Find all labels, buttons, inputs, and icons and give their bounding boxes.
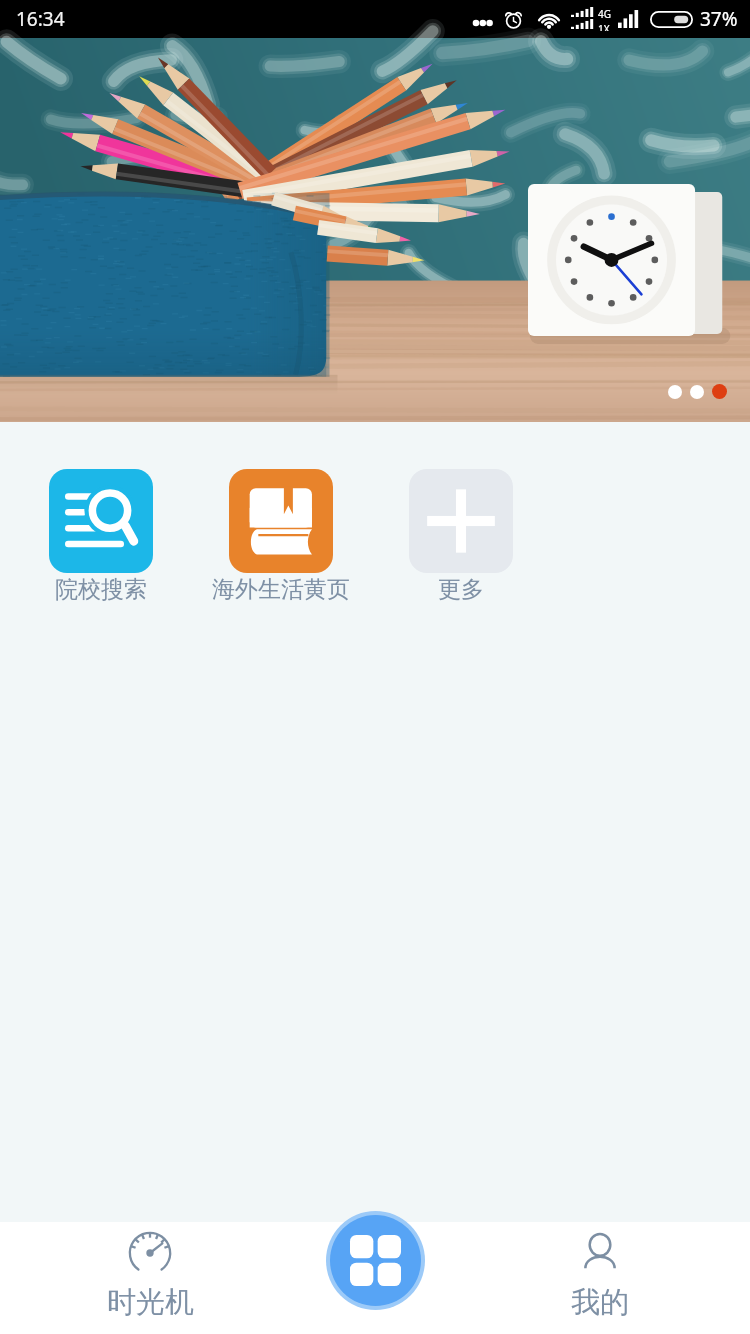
button[interactable]: Time machine [50,1222,250,1334]
button[interactable]: Profile [500,1222,700,1334]
button[interactable]: 院校搜索 [11,469,191,604]
other: Profile [576,1229,624,1277]
staticText: 海外生活黄页 [212,575,350,604]
staticText: 4G [598,7,611,21]
staticText: 更多 [438,575,484,604]
staticText: 1X [598,22,610,31]
button[interactable]: 海外生活黄页 [191,469,371,604]
other: Time machine [126,1229,174,1277]
button[interactable]: 更多 [371,469,551,604]
staticText: 我的 [571,1284,629,1321]
staticText: 院校搜索 [55,575,147,604]
staticText: 37% [700,6,738,32]
staticText: 16:34 [16,6,65,32]
button[interactable]: Apps [330,1215,421,1306]
staticText: 时光机 [107,1284,194,1321]
